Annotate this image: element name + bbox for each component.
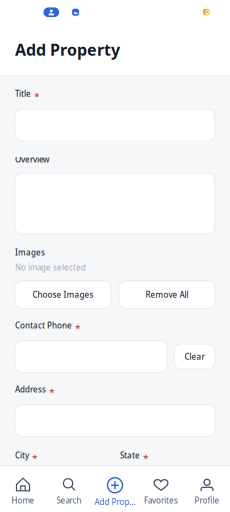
staticText: City xyxy=(15,450,29,461)
staticText: Clear xyxy=(184,351,204,362)
staticText: No image selected xyxy=(15,262,86,273)
staticText: * xyxy=(34,90,39,103)
staticText: Remove All xyxy=(145,289,188,300)
staticText: Address xyxy=(15,384,46,395)
staticText: Title xyxy=(15,88,31,99)
staticText: Choose Images xyxy=(32,289,93,300)
staticText: Profile xyxy=(194,495,219,506)
button[interactable]: Choose Images xyxy=(15,281,111,309)
button[interactable]: Home xyxy=(0,466,46,512)
staticText: State xyxy=(120,450,140,461)
staticText: Add Prop... xyxy=(94,496,135,507)
button[interactable]: Add Prop... xyxy=(92,466,138,512)
staticText: Home xyxy=(11,495,34,506)
staticText: Contact Phone xyxy=(15,320,72,331)
staticText: Search xyxy=(56,495,81,506)
staticText: * xyxy=(32,452,37,464)
button[interactable]: Clear xyxy=(174,344,215,369)
button[interactable]: Search xyxy=(46,466,92,512)
staticText: * xyxy=(75,322,80,334)
button[interactable]: Favorites xyxy=(138,466,184,512)
staticText: * xyxy=(143,452,148,464)
staticText: Favorites xyxy=(144,495,178,506)
staticText: Add Property xyxy=(15,39,120,60)
staticText: * xyxy=(49,386,54,398)
staticText: Overview xyxy=(15,154,49,165)
staticText: Images xyxy=(15,247,45,258)
button[interactable]: Profile xyxy=(184,466,230,512)
button[interactable]: Remove All xyxy=(119,281,215,309)
